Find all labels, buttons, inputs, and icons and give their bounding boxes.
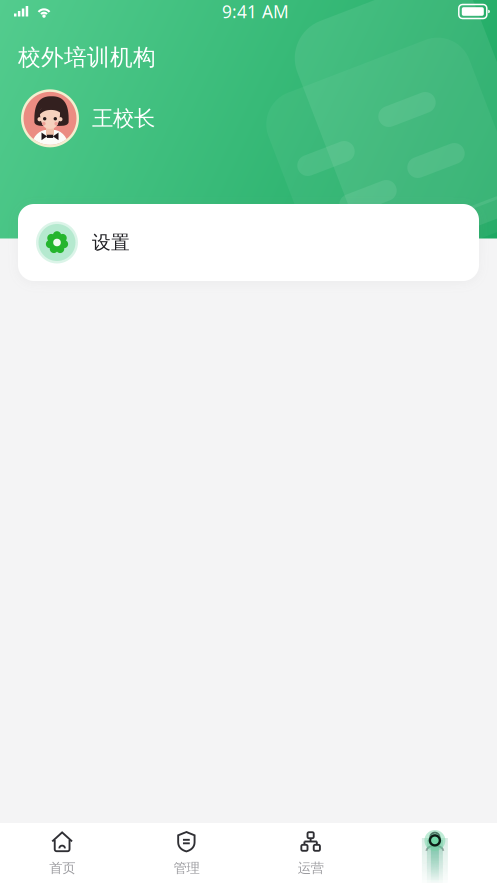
staticText: 首页	[49, 860, 75, 876]
button[interactable]: 首页	[0, 823, 124, 883]
staticText: 我的	[422, 860, 448, 876]
staticText: 校外培训机构	[18, 43, 156, 71]
button[interactable]: 管理	[124, 823, 248, 883]
button[interactable]: 我的	[373, 823, 497, 883]
staticText: 管理	[173, 860, 199, 876]
staticText: 运营	[298, 860, 324, 876]
staticText: 王校长	[92, 105, 155, 131]
staticText: 设置	[92, 231, 130, 254]
staticText: 9:41 AM	[222, 0, 289, 23]
button[interactable]: 设置	[18, 204, 479, 281]
button[interactable]: 运营	[248, 823, 373, 883]
